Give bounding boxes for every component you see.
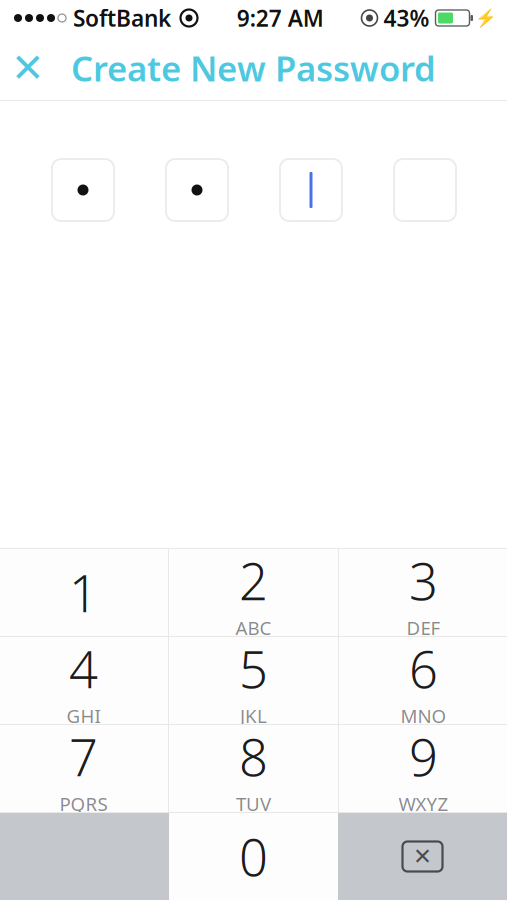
staticText: SoftBank [73, 3, 171, 33]
staticText: DEF [406, 615, 440, 640]
staticText: GHI [66, 703, 100, 728]
staticText: 7 [69, 723, 98, 790]
staticText: 3 [409, 547, 438, 614]
staticText: ABC [235, 615, 271, 640]
button[interactable]: 7 [0, 725, 168, 812]
button[interactable]: 5 [169, 637, 338, 724]
button[interactable]: Delete [338, 813, 507, 900]
staticText: 2 [239, 547, 268, 614]
button[interactable]: 6 [339, 637, 507, 724]
staticText: 4 [69, 635, 98, 702]
staticText: ✕ [413, 844, 432, 869]
staticText: 0 [239, 823, 268, 890]
button[interactable]: 0 [169, 813, 338, 900]
staticText: 9:27 AM [237, 3, 324, 33]
button[interactable]: 9 [339, 725, 507, 812]
staticText: PQRS [59, 791, 107, 816]
staticText: MNO [400, 703, 446, 728]
staticText: 1 [69, 559, 98, 626]
staticText: ⚡ [475, 8, 497, 28]
staticText: ✕ [11, 45, 45, 91]
staticText: 9 [409, 723, 438, 790]
button[interactable]: 4 [0, 637, 168, 724]
staticText: Create New Password [71, 45, 436, 91]
button[interactable]: Close [0, 40, 56, 96]
button[interactable]: 1 [0, 549, 168, 636]
staticText: TUV [236, 791, 271, 816]
staticText: 43% [383, 3, 429, 33]
button[interactable]: 3 [339, 549, 507, 636]
staticText: WXYZ [398, 791, 448, 816]
button[interactable]: 2 [169, 549, 338, 636]
staticText: 6 [409, 635, 438, 702]
staticText: JKL [240, 703, 267, 728]
button[interactable]: 8 [169, 725, 338, 812]
staticText: 8 [239, 723, 268, 790]
staticText: 5 [239, 635, 268, 702]
